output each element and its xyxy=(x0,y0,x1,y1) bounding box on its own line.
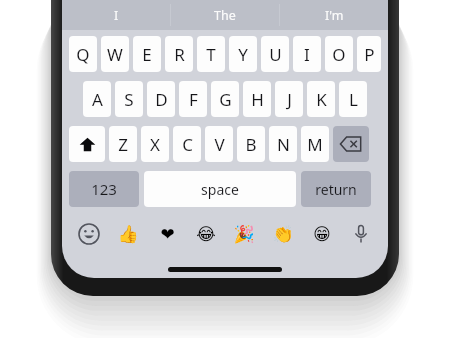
staticText: A xyxy=(92,88,103,111)
staticText: P xyxy=(364,43,375,66)
button[interactable]: P xyxy=(357,36,381,72)
button[interactable]: U xyxy=(261,36,289,72)
button[interactable]: X xyxy=(141,126,169,162)
staticText: I'm xyxy=(325,7,344,24)
staticText: I xyxy=(114,7,119,24)
staticText: O xyxy=(332,43,346,66)
staticText: J xyxy=(287,88,292,111)
staticText: The xyxy=(214,7,236,24)
button[interactable]: Thumbs up xyxy=(115,221,141,247)
button[interactable]: R xyxy=(165,36,193,72)
staticText: 😁 xyxy=(313,224,331,244)
staticText: 🎉 xyxy=(233,224,255,244)
button[interactable]: The xyxy=(171,0,279,30)
staticText: R xyxy=(174,43,185,66)
staticText: space xyxy=(201,180,239,199)
button[interactable]: Emoji keyboard xyxy=(76,221,102,247)
staticText: 😂 xyxy=(196,224,216,244)
button[interactable]: F xyxy=(179,81,207,117)
button[interactable]: M xyxy=(301,126,329,162)
button[interactable]: V xyxy=(205,126,233,162)
staticText: G xyxy=(219,88,232,111)
staticText: K xyxy=(316,88,327,111)
staticText: N xyxy=(277,133,290,156)
button[interactable]: return xyxy=(301,171,371,207)
button[interactable]: I'm xyxy=(280,0,388,30)
staticText: E xyxy=(142,43,152,66)
staticText: F xyxy=(189,88,198,111)
button[interactable]: J xyxy=(275,81,303,117)
button[interactable]: Clapping hands xyxy=(270,221,296,247)
button[interactable]: L xyxy=(339,81,367,117)
button[interactable]: Z xyxy=(109,126,137,162)
staticText: return xyxy=(315,180,357,199)
button[interactable]: space xyxy=(144,171,296,207)
button[interactable]: Backspace xyxy=(333,126,369,162)
button[interactable]: K xyxy=(307,81,335,117)
button[interactable]: N xyxy=(269,126,297,162)
staticText: ❤️ xyxy=(160,224,175,244)
button[interactable]: E xyxy=(133,36,161,72)
staticText: 👍 xyxy=(117,224,139,244)
button[interactable]: Y xyxy=(229,36,257,72)
button[interactable]: Tears of joy xyxy=(193,221,219,247)
button[interactable]: T xyxy=(197,36,225,72)
button[interactable]: O xyxy=(325,36,353,72)
staticText: I xyxy=(304,43,310,66)
staticText: S xyxy=(124,88,134,111)
staticText: H xyxy=(251,88,264,111)
staticText: W xyxy=(107,43,123,66)
button[interactable]: Dictate xyxy=(348,221,374,247)
button[interactable]: Heart xyxy=(154,221,180,247)
button[interactable]: G xyxy=(211,81,239,117)
staticText: M xyxy=(307,133,323,156)
staticText: D xyxy=(155,88,168,111)
staticText: C xyxy=(182,133,193,156)
button[interactable]: I xyxy=(62,0,170,30)
staticText: B xyxy=(245,133,257,156)
button[interactable]: I xyxy=(293,36,321,72)
staticText: L xyxy=(349,88,358,111)
button[interactable]: S xyxy=(115,81,143,117)
staticText: Z xyxy=(118,133,128,156)
staticText: Y xyxy=(238,43,248,66)
button[interactable]: Q xyxy=(69,36,97,72)
button[interactable]: W xyxy=(101,36,129,72)
staticText: U xyxy=(269,43,282,66)
staticText: V xyxy=(214,133,225,156)
button[interactable]: D xyxy=(147,81,175,117)
button[interactable]: Party popper xyxy=(231,221,257,247)
staticText: Q xyxy=(76,43,90,66)
button[interactable]: A xyxy=(83,81,111,117)
button[interactable]: B xyxy=(237,126,265,162)
staticText: 👏 xyxy=(272,224,294,244)
button[interactable]: H xyxy=(243,81,271,117)
staticText: T xyxy=(206,43,216,66)
staticText: 123 xyxy=(91,179,117,199)
button[interactable]: Grinning xyxy=(309,221,335,247)
button[interactable]: Shift xyxy=(69,126,105,162)
button[interactable]: 123 xyxy=(69,171,139,207)
staticText: X xyxy=(150,133,160,156)
button[interactable]: C xyxy=(173,126,201,162)
